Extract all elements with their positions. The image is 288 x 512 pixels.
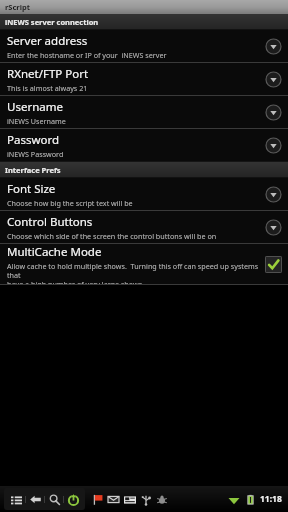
button[interactable]: Password xyxy=(0,129,288,162)
button[interactable]: Expand xyxy=(265,219,282,236)
button[interactable]: RXnet/FTP Port xyxy=(0,63,288,96)
button[interactable]: Home xyxy=(64,490,82,508)
staticText: iNEWS Password xyxy=(7,149,64,159)
button[interactable]: Expand xyxy=(265,186,282,203)
button[interactable]: MultiCache Mode xyxy=(0,244,288,285)
staticText: iNEWS server connection xyxy=(5,17,99,27)
staticText: Choose which side of the screen the cont… xyxy=(7,231,217,241)
staticText: MultiCache Mode xyxy=(7,244,102,260)
staticText: Enter the hostname or IP of your iNEWS s… xyxy=(7,50,167,60)
staticText: Password xyxy=(7,132,60,148)
button[interactable]: Menu xyxy=(7,490,25,508)
button[interactable]: Username xyxy=(0,96,288,129)
staticText: 11:18 xyxy=(260,493,282,505)
staticText: Control Buttons xyxy=(7,214,93,230)
button[interactable]: Server address xyxy=(0,30,288,63)
button[interactable]: Control Buttons xyxy=(0,211,288,244)
button[interactable]: Back xyxy=(26,490,44,508)
staticText: Allow cache to hold multiple shows. Turn… xyxy=(7,261,265,284)
staticText: Server address xyxy=(7,33,88,49)
staticText: This is almost always 21 xyxy=(7,83,88,93)
staticText: iNEWS Username xyxy=(7,116,66,126)
button[interactable]: Search xyxy=(45,490,63,508)
staticText: Interface Prefs xyxy=(5,165,61,175)
staticText: Font Size xyxy=(7,181,56,197)
button[interactable]: Font Size xyxy=(0,178,288,211)
staticText: rScript xyxy=(5,2,30,12)
staticText: Choose how big the script text will be xyxy=(7,198,133,208)
button[interactable]: Expand xyxy=(265,71,282,88)
button[interactable]: MultiCache Mode checkbox xyxy=(265,256,282,273)
button[interactable]: Expand xyxy=(265,38,282,55)
button[interactable]: Expand xyxy=(265,137,282,154)
button[interactable]: Expand xyxy=(265,104,282,121)
staticText: RXnet/FTP Port xyxy=(7,66,89,82)
staticText: Username xyxy=(7,99,63,115)
